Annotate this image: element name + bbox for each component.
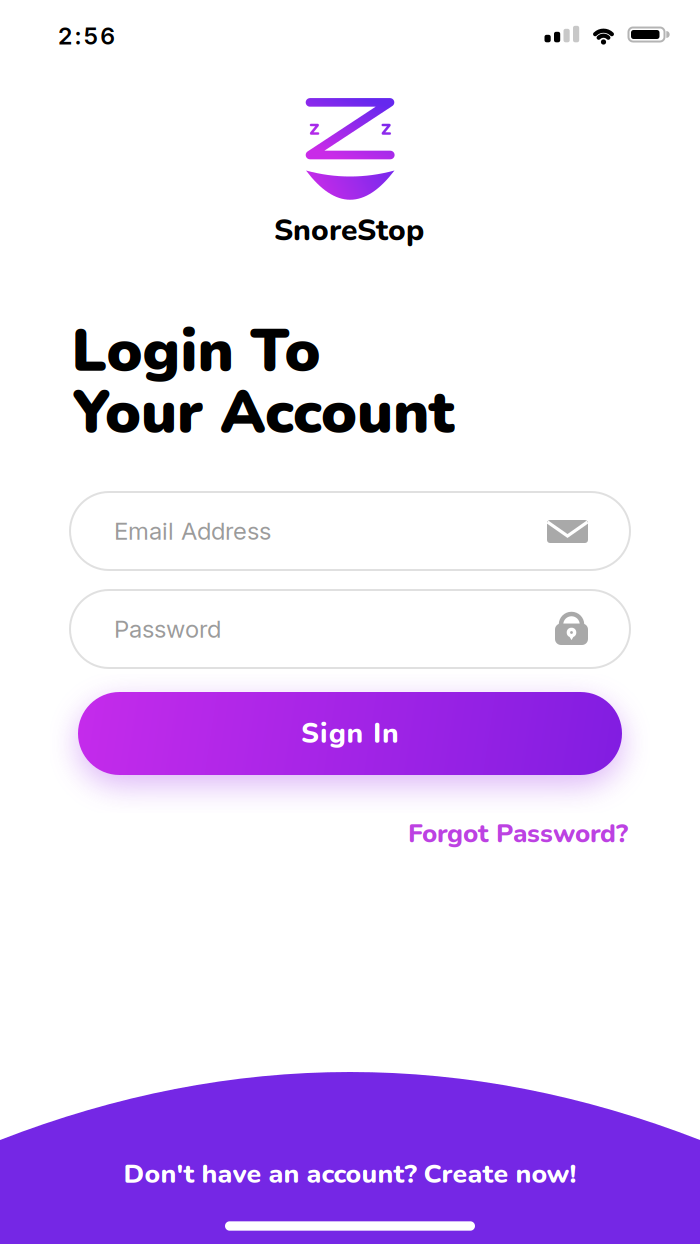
staticText: Sign In (301, 714, 399, 753)
button[interactable]: Sign In (78, 692, 622, 775)
staticText: 2 (58, 22, 72, 50)
staticText: 6 (100, 22, 115, 50)
staticText: Login To (71, 310, 320, 392)
button[interactable]: Email Address (70, 492, 630, 570)
button[interactable]: Forgot Password? (408, 816, 628, 851)
staticText: 5 (84, 22, 98, 50)
staticText: Forgot Password? (408, 816, 628, 851)
staticText: Don't have an account? Create now! (123, 1156, 576, 1192)
staticText: SnoreStop (274, 210, 424, 251)
staticText: Your Account (72, 371, 455, 453)
button[interactable]: Don't have an account? Create now! (0, 1096, 700, 1244)
button[interactable]: Password (70, 590, 630, 668)
staticText: Password (114, 614, 221, 643)
staticText: : (74, 22, 81, 50)
staticText: Email Address (114, 516, 271, 545)
